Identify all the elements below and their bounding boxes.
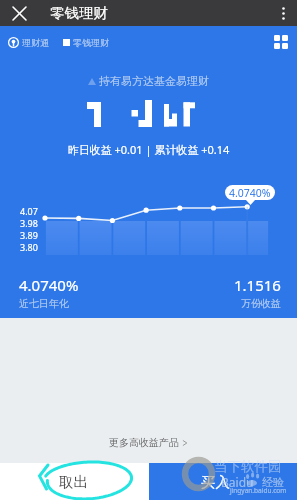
staticText: 4.0740% <box>19 275 79 295</box>
button[interactable]: More options <box>269 0 297 26</box>
staticText: 取出 <box>59 473 88 491</box>
staticText: 4.0740% <box>229 186 271 200</box>
staticText: 当下软件园 <box>214 458 282 475</box>
staticText: 1.1516 <box>234 275 281 295</box>
staticText: 3.89 <box>20 229 38 241</box>
staticText: 昨日收益 +0.01 | 累计收益 +0.14 <box>0 142 297 157</box>
staticText: 3.80 <box>20 241 38 253</box>
staticText: 近七日年化 <box>19 297 69 310</box>
button[interactable]: 更多高收益产品 <box>109 436 188 449</box>
staticText: 理财通 <box>22 37 49 48</box>
staticText: Baidu <box>221 474 254 490</box>
staticText: 零钱理财 <box>73 37 109 48</box>
button[interactable]: 买入 <box>149 463 297 500</box>
staticText: 更多高收益产品 <box>109 436 179 449</box>
staticText: 3.98 <box>20 217 38 229</box>
button[interactable]: Close <box>0 0 39 26</box>
staticText: 4.07 <box>20 205 38 217</box>
staticText: 万份收益 <box>241 297 281 310</box>
staticText: 买入 <box>201 473 230 491</box>
button[interactable]: Grid menu <box>269 30 293 54</box>
staticText: 零钱理财 <box>50 4 108 22</box>
staticText: jingyan.baidu.com <box>230 486 287 495</box>
staticText: 经验 <box>262 475 284 489</box>
staticText: 持有易方达基金易理财 <box>99 74 209 88</box>
button[interactable]: 取出 <box>0 463 149 500</box>
